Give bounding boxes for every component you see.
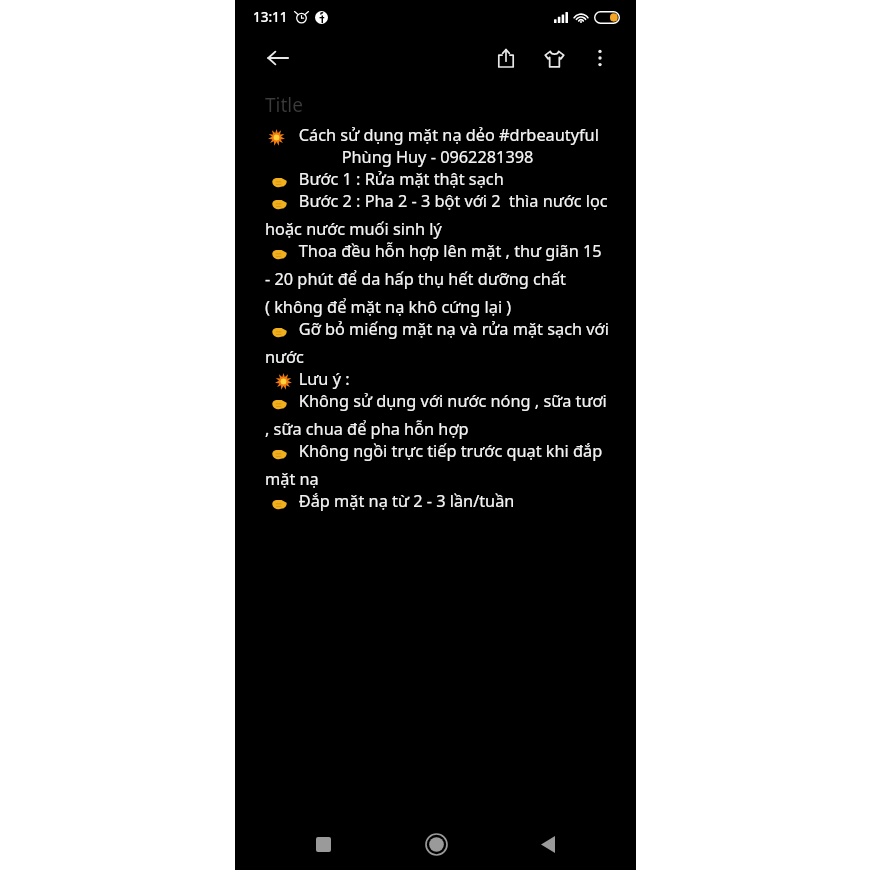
- button[interactable]: Back: [261, 41, 295, 75]
- staticText: Phùng Huy - 0962281398: [265, 146, 610, 168]
- button[interactable]: Home: [412, 820, 460, 868]
- staticText: Title: [265, 92, 303, 118]
- staticText: MM Lưu ý :: [265, 368, 350, 390]
- staticText: 13:11: [253, 8, 288, 26]
- staticText: MM Không sử dụng với nước nóng , sữa tươ…: [265, 390, 610, 440]
- staticText: MM Gỡ bỏ miếng mặt nạ và rửa mặt sạch vớ…: [265, 318, 610, 368]
- button[interactable]: Back: [524, 820, 572, 868]
- staticText: MM Đắp mặt nạ từ 2 - 3 lần/tuần: [265, 490, 515, 512]
- staticText: MM Bước 1 : Rửa mặt thật sạch: [265, 168, 504, 190]
- button[interactable]: MM Cách sử dụng mặt nạ dẻo #drbeautyful: [265, 124, 610, 512]
- button[interactable]: Title: [265, 92, 606, 118]
- button[interactable]: Recent apps: [299, 820, 347, 868]
- button[interactable]: More options: [582, 40, 618, 76]
- staticText: MM Thoa đều hỗn hợp lên mặt , thư giãn 1…: [265, 240, 610, 318]
- button[interactable]: Theme: [536, 40, 572, 76]
- staticText: MM Cách sử dụng mặt nạ dẻo #drbeautyful: [265, 124, 599, 146]
- staticText: MM Bước 2 : Pha 2 - 3 bột với 2 thìa nướ…: [265, 190, 610, 240]
- staticText: MM Không ngồi trực tiếp trước quạt khi đ…: [265, 440, 610, 490]
- button[interactable]: Share: [488, 40, 524, 76]
